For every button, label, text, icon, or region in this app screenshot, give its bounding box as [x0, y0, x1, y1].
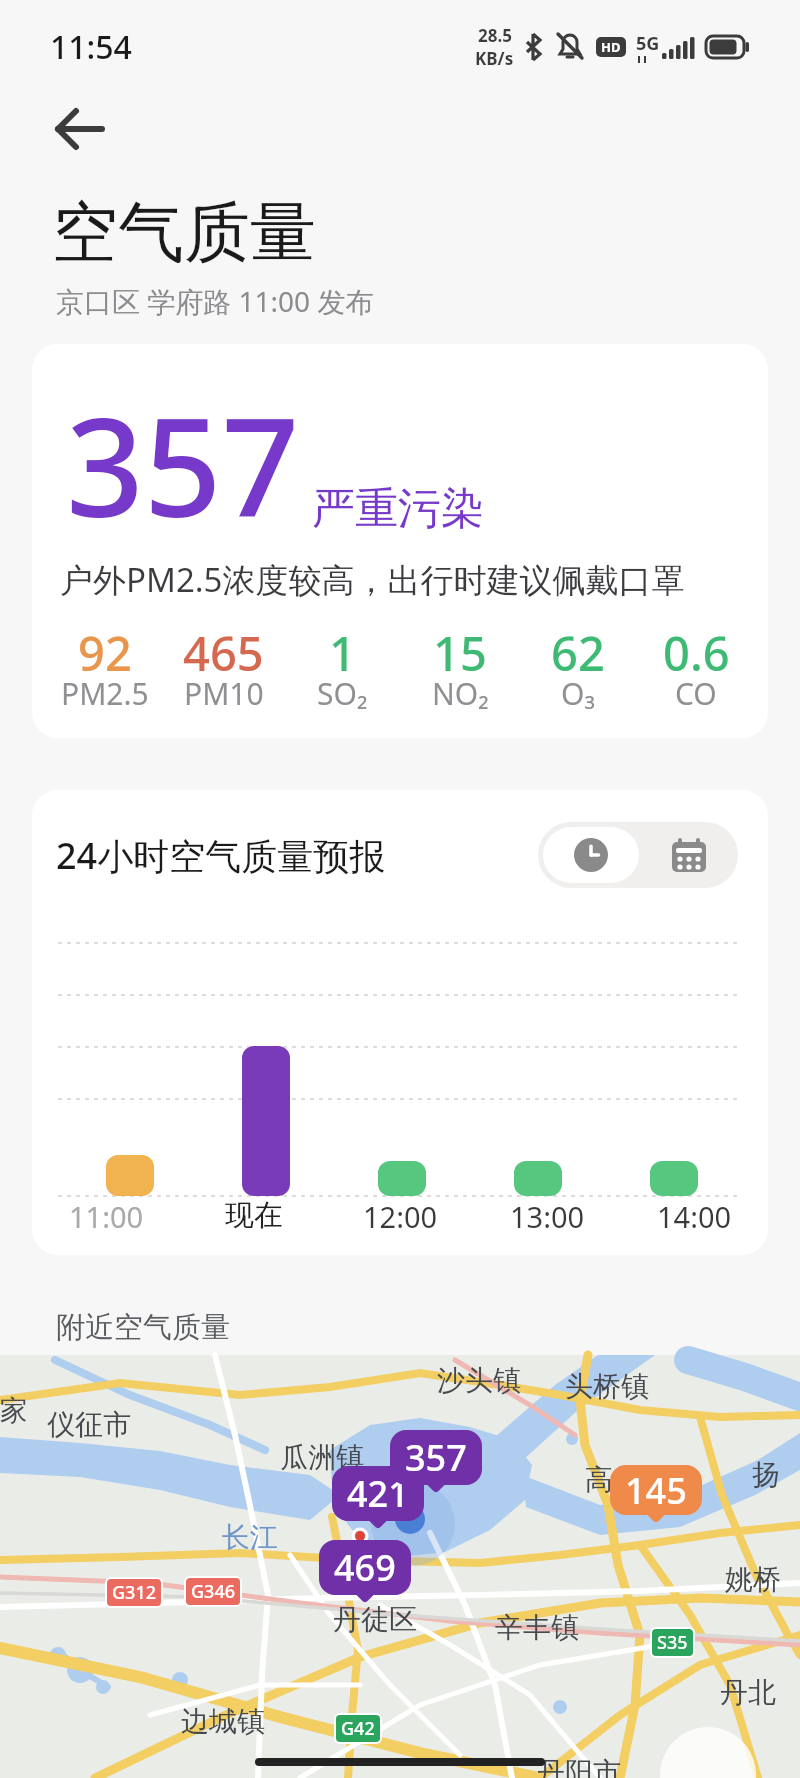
staticText: 京口区 学府路 11:00 发布	[56, 282, 374, 320]
staticText: 头桥镇	[565, 1369, 649, 1404]
staticText: 145	[625, 1466, 687, 1515]
staticText: 14:00	[657, 1197, 732, 1236]
staticText: 严重污染	[312, 482, 484, 536]
staticText: 丹阳市	[537, 1755, 621, 1778]
staticText: 13:00	[510, 1197, 585, 1236]
staticText: HD	[601, 38, 621, 56]
staticText: 家	[0, 1393, 28, 1428]
staticText: 1	[329, 621, 356, 685]
staticText: 0.6	[663, 621, 730, 685]
button[interactable]	[543, 827, 639, 883]
button[interactable]: 357	[390, 1430, 482, 1485]
staticText: 15	[433, 621, 487, 685]
staticText: 长江	[222, 1520, 278, 1555]
staticText: 仪征市	[47, 1407, 131, 1442]
staticText: PM10	[184, 673, 264, 714]
staticText: 24小时空气质量预报	[56, 831, 386, 880]
staticText: 11:00	[69, 1197, 144, 1236]
staticText: 丹徒区	[333, 1602, 417, 1637]
staticText: SO₂	[317, 673, 368, 714]
staticText: G346	[191, 1579, 235, 1604]
staticText: 11:54	[50, 25, 132, 69]
staticText: 357	[405, 1433, 467, 1482]
button[interactable]	[46, 104, 110, 154]
staticText: 丹北	[720, 1675, 776, 1710]
staticText: KB/s	[475, 47, 514, 70]
staticText: 5G	[636, 31, 660, 56]
staticText: PM2.5	[61, 673, 149, 714]
staticText: G312	[112, 1580, 156, 1605]
button[interactable]: 421	[332, 1466, 424, 1521]
staticText: 辛丰镇	[495, 1610, 579, 1645]
staticText: 357	[66, 372, 300, 557]
staticText: 28.5	[478, 24, 512, 47]
staticText: 421	[347, 1469, 409, 1518]
staticText: 469	[334, 1543, 396, 1592]
staticText: 瓜洲镇	[280, 1440, 364, 1475]
staticText: 边城镇	[181, 1704, 265, 1739]
staticText: CO	[675, 673, 717, 714]
staticText: 空气质量	[52, 191, 316, 274]
staticText: NO₂	[432, 673, 489, 714]
button[interactable]: 469	[319, 1540, 411, 1595]
staticText: S35	[657, 1630, 688, 1655]
staticText: 465	[183, 621, 264, 685]
staticText: 12:00	[363, 1197, 438, 1236]
staticText: 沙头镇	[437, 1363, 521, 1398]
staticText: O₃	[561, 673, 595, 714]
staticText: 62	[551, 621, 605, 685]
button[interactable]: 145	[610, 1465, 702, 1515]
staticText: 92	[78, 621, 132, 685]
staticText: 附近空气质量	[56, 1309, 230, 1346]
staticText: 高桥镇	[585, 1462, 669, 1497]
staticText: 现在	[225, 1197, 283, 1234]
button[interactable]	[639, 822, 738, 888]
staticText: G42	[341, 1716, 375, 1741]
staticText: 户外PM2.5浓度较高，出行时建议佩戴口罩	[60, 557, 685, 602]
staticText: 姚桥	[725, 1562, 781, 1597]
staticText: 扬	[752, 1457, 780, 1492]
